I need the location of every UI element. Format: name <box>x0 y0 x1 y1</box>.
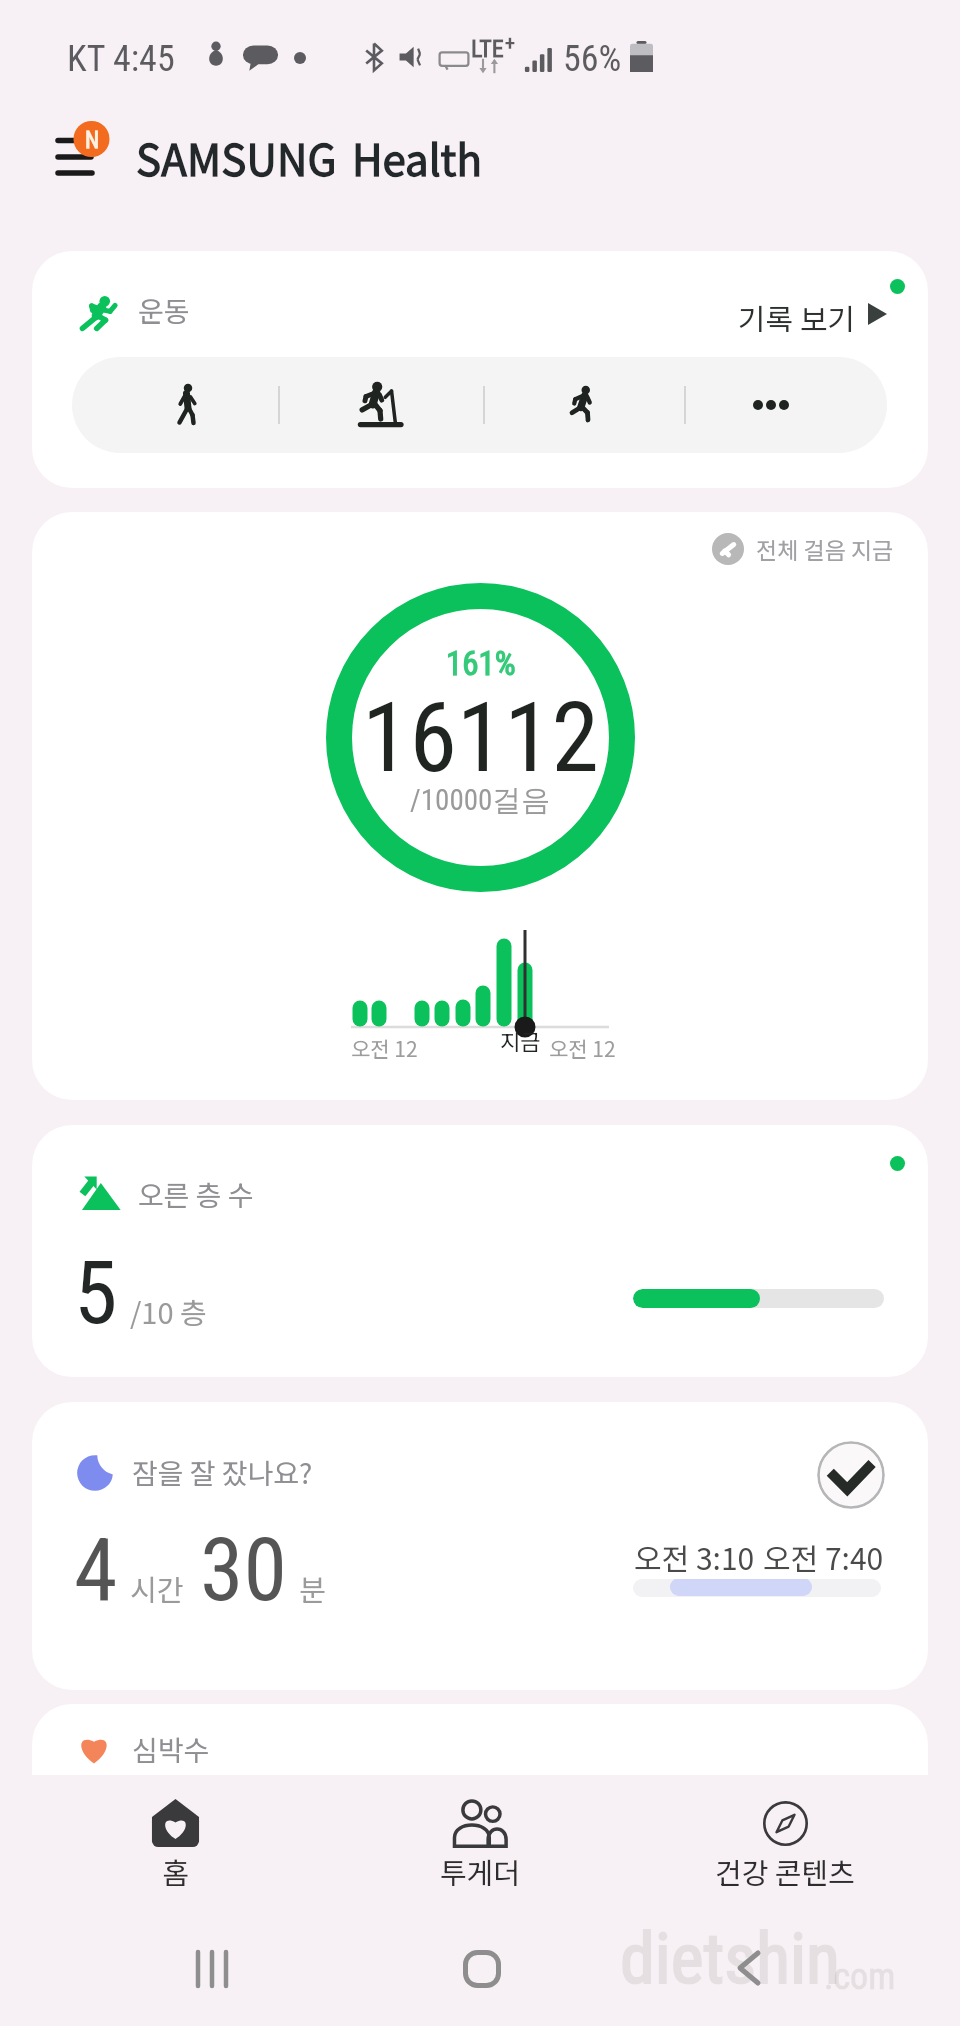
staticText: 56% <box>563 38 622 80</box>
button[interactable]: 심박수 <box>32 1704 928 1804</box>
staticText: 전체 걸음 지금 <box>756 532 894 565</box>
button[interactable]: Home <box>421 1912 541 2026</box>
button[interactable]: 잠을 잘 잤나요? <box>32 1402 928 1690</box>
staticText: 운동 <box>138 290 190 331</box>
button[interactable]: Mark sleep as good <box>817 1441 885 1509</box>
button[interactable]: 홈 <box>25 1775 325 1910</box>
staticText: 심박수 <box>132 1729 210 1770</box>
button[interactable]: 투게더 <box>330 1775 630 1910</box>
staticText: 건강 콘텐츠 <box>715 1850 855 1892</box>
staticText: 오전 3:10 <box>634 1535 755 1578</box>
button[interactable]: More options <box>720 357 822 453</box>
staticText: KT 4:45 <box>67 38 175 80</box>
staticText: + <box>505 31 515 54</box>
staticText: .com <box>824 1956 896 1998</box>
staticText: 홈 <box>162 1850 189 1892</box>
button[interactable]: 운동 <box>32 251 928 488</box>
button[interactable]: Treadmill <box>329 357 431 453</box>
staticText: 분 <box>299 1567 326 1609</box>
button[interactable]: Back <box>689 1912 809 2026</box>
staticText: N <box>85 127 100 154</box>
staticText: 오른 층 수 <box>138 1174 254 1215</box>
button[interactable]: Walking <box>137 357 239 453</box>
button[interactable]: Recent apps <box>152 1912 272 2026</box>
staticText: /10 층 <box>130 1290 207 1332</box>
button[interactable]: Menu <box>52 112 120 180</box>
staticText: 161% <box>446 644 516 683</box>
staticText: 오전 7:40 <box>763 1535 884 1578</box>
staticText: LTE <box>471 35 504 63</box>
staticText: 4 <box>74 1518 118 1621</box>
staticText: 시간 <box>130 1567 184 1609</box>
staticText: dietshin <box>620 1918 841 2000</box>
staticText: /10000걸음 <box>410 782 551 819</box>
staticText: 투게더 <box>440 1850 521 1892</box>
button[interactable]: 전체 걸음 지금 <box>32 512 928 1100</box>
button[interactable]: 오른 층 수 <box>32 1125 928 1377</box>
staticText: 기록 보기 <box>738 296 856 332</box>
staticText: 오전 12 <box>351 1033 418 1063</box>
staticText: 오전 12 <box>549 1033 616 1063</box>
button[interactable]: 기록 보기 <box>738 296 887 332</box>
staticText: 30 <box>200 1518 287 1621</box>
staticText: 16112 <box>362 682 599 795</box>
staticText: 잠을 잘 잤나요? <box>132 1452 313 1493</box>
staticText: SAMSUNG <box>136 127 337 188</box>
staticText: 5 <box>74 1241 118 1344</box>
button[interactable]: Running <box>532 357 634 453</box>
staticText: 지금 <box>500 1024 541 1056</box>
button[interactable]: 건강 콘텐츠 <box>635 1775 935 1910</box>
staticText: Health <box>352 127 482 188</box>
